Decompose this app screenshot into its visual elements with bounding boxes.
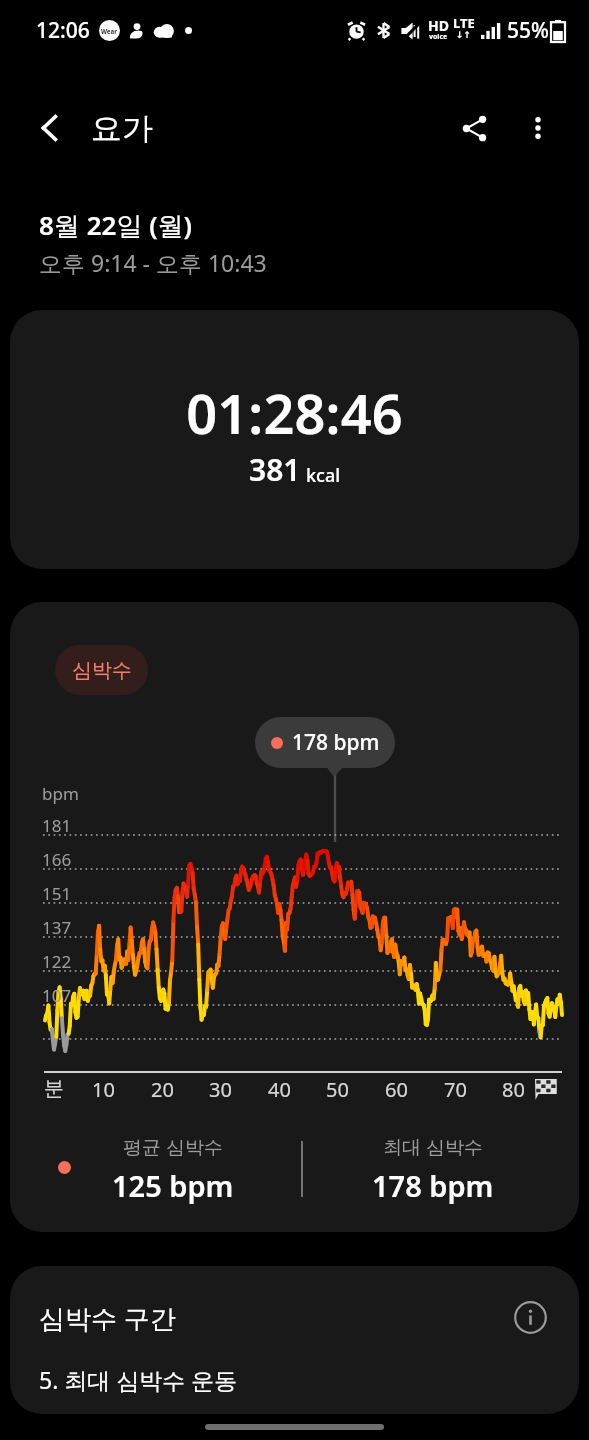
staticText: 178 bpm — [372, 1166, 494, 1205]
staticText: 50 — [326, 1076, 349, 1103]
staticText: 80 — [502, 1076, 525, 1103]
staticText: 10 — [92, 1076, 115, 1103]
staticText: 8월 22일 (월) — [39, 207, 192, 243]
staticText: 122 — [42, 950, 72, 973]
staticText: 60 — [385, 1076, 408, 1103]
button[interactable]: Share — [446, 100, 502, 156]
staticText: 오후 9:14 - 오후 10:43 — [39, 247, 267, 278]
staticText: 30 — [209, 1076, 232, 1103]
staticText: 12:06 — [36, 16, 90, 45]
staticText: kcal — [306, 463, 341, 488]
staticText: 40 — [268, 1076, 291, 1103]
button[interactable]: More options — [510, 100, 566, 156]
button[interactable]: 01:28:46 — [10, 310, 579, 569]
staticText: 70 — [444, 1076, 467, 1103]
staticText: 요가 — [91, 109, 153, 148]
staticText: 최대 심박수 — [383, 1134, 483, 1160]
staticText: 107 — [42, 984, 72, 1007]
staticText: 01:28:46 — [10, 376, 579, 450]
staticText: 166 — [42, 848, 72, 871]
staticText: 5. 최대 심박수 운동 — [39, 1364, 238, 1395]
staticText: HD — [428, 16, 449, 35]
staticText: 심박수 구간 — [39, 1300, 176, 1336]
button[interactable]: Info — [504, 1291, 556, 1343]
staticText: 55% — [507, 16, 549, 45]
button[interactable]: 심박수 — [55, 645, 148, 695]
staticText: LTE — [453, 14, 475, 32]
staticText: 178 bpm — [292, 728, 380, 757]
staticText: bpm — [42, 782, 79, 805]
staticText: Wear — [101, 27, 118, 35]
staticText: 평균 심박수 — [123, 1134, 223, 1160]
staticText: 심박수 — [72, 658, 132, 683]
staticText: 381 — [249, 449, 301, 490]
staticText: 분 — [44, 1076, 64, 1101]
button[interactable]: 178 bpm — [255, 717, 395, 768]
staticText: voice — [429, 32, 448, 42]
staticText: 181 — [42, 814, 72, 837]
staticText: 20 — [151, 1076, 174, 1103]
staticText: ↓↑ — [456, 30, 472, 40]
staticText: 137 — [42, 916, 72, 939]
staticText: 151 — [42, 882, 72, 905]
button[interactable]: 심박수 구간 — [10, 1266, 579, 1414]
staticText: 125 bpm — [112, 1166, 234, 1205]
button[interactable]: Back — [22, 100, 78, 156]
